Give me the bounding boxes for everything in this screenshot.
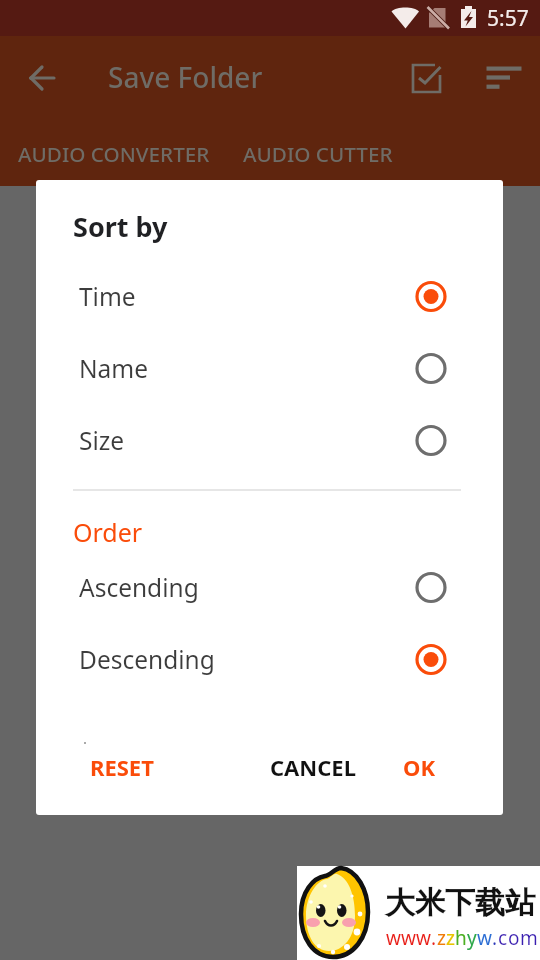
- staticText: c: [498, 925, 508, 951]
- button[interactable]: AUDIO CONVERTER: [0, 126, 228, 182]
- staticText: AUDIO CONVERTER: [18, 140, 210, 168]
- button[interactable]: AUDIO CUTTER: [225, 126, 411, 182]
- staticText: CANCEL: [270, 752, 356, 782]
- staticText: Sort by: [73, 208, 168, 245]
- button[interactable]: Back: [18, 54, 66, 102]
- staticText: Time: [79, 280, 136, 313]
- staticText: h: [455, 925, 467, 951]
- button[interactable]: RESET: [74, 742, 170, 792]
- staticText: w: [401, 925, 416, 951]
- staticText: RESET: [90, 752, 154, 782]
- staticText: Descending: [79, 643, 215, 676]
- button[interactable]: Time: [36, 267, 503, 325]
- staticText: z: [437, 925, 446, 951]
- staticText: w: [477, 925, 492, 951]
- button[interactable]: OK: [387, 742, 452, 792]
- staticText: OK: [403, 752, 436, 782]
- staticText: z: [446, 925, 455, 951]
- button[interactable]: Sort: [478, 54, 526, 102]
- staticText: y: [467, 925, 477, 951]
- staticText: Size: [79, 424, 125, 457]
- button[interactable]: Descending: [36, 630, 503, 688]
- staticText: AUDIO CUTTER: [243, 140, 393, 168]
- button[interactable]: Ascending: [36, 558, 503, 616]
- staticText: Ascending: [79, 571, 199, 604]
- button[interactable]: Name: [36, 339, 503, 397]
- button[interactable]: Select all: [402, 54, 450, 102]
- staticText: m: [520, 925, 538, 951]
- staticText: w: [416, 925, 431, 951]
- staticText: .: [492, 925, 498, 951]
- staticText: .: [431, 925, 437, 951]
- staticText: o: [508, 925, 520, 951]
- staticText: Order: [73, 515, 143, 549]
- button[interactable]: CANCEL: [254, 742, 372, 792]
- staticText: 大米下载站: [385, 884, 535, 922]
- button[interactable]: Size: [36, 411, 503, 469]
- staticText: Save Folder: [108, 58, 263, 96]
- staticText: Name: [79, 352, 149, 385]
- staticText: 5:57: [487, 4, 529, 33]
- staticText: w: [386, 925, 401, 951]
